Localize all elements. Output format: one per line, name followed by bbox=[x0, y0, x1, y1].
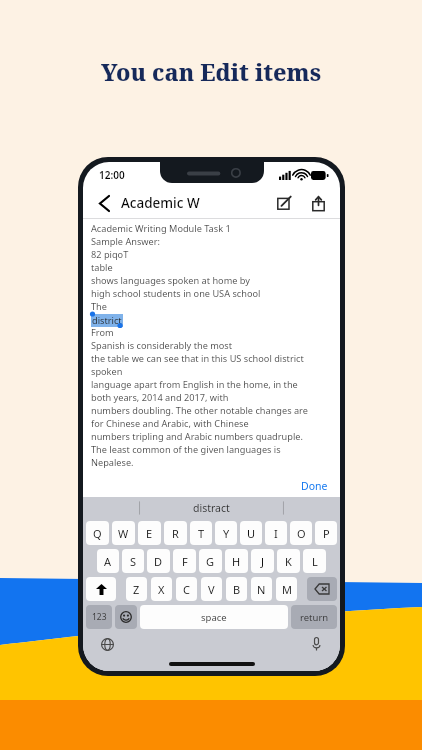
button[interactable]: E bbox=[138, 521, 161, 545]
button[interactable]: P bbox=[315, 521, 337, 545]
button[interactable]: Done bbox=[289, 479, 340, 493]
staticText: D bbox=[154, 554, 163, 569]
button[interactable]: X bbox=[151, 577, 172, 601]
staticText: M bbox=[282, 582, 292, 597]
button[interactable]: 123 bbox=[86, 605, 112, 629]
staticText: R bbox=[172, 526, 179, 541]
staticText: Y bbox=[223, 526, 230, 541]
staticText: for Chinese and Arabic, with Chinese bbox=[91, 417, 249, 430]
button[interactable]: S bbox=[122, 549, 144, 573]
staticText: You can Edit items bbox=[0, 56, 422, 87]
staticText: O bbox=[297, 526, 306, 541]
staticText: B bbox=[233, 582, 241, 597]
staticText: P bbox=[323, 526, 330, 541]
button[interactable]: D bbox=[147, 549, 170, 573]
staticText: N bbox=[257, 582, 266, 597]
staticText: numbers tripling and Arabic numbers quad… bbox=[91, 430, 303, 443]
staticText: Spanish is considerably the most bbox=[91, 339, 233, 352]
staticText: Academic W bbox=[121, 194, 200, 212]
staticText: distract bbox=[193, 501, 230, 515]
staticText: U bbox=[247, 526, 256, 541]
button[interactable]: return bbox=[291, 605, 337, 629]
staticText: 82 piqoT bbox=[91, 248, 129, 261]
staticText: The bbox=[91, 300, 107, 313]
staticText: G bbox=[206, 554, 215, 569]
button[interactable]: Back bbox=[93, 192, 115, 214]
button[interactable]: K bbox=[277, 549, 300, 573]
staticText: A bbox=[104, 554, 112, 569]
button[interactable]: W bbox=[112, 521, 135, 545]
staticText: X bbox=[158, 582, 165, 597]
staticText: W bbox=[118, 526, 129, 541]
button[interactable]: Y bbox=[215, 521, 237, 545]
staticText: Z bbox=[133, 582, 140, 597]
button[interactable]: C bbox=[176, 577, 197, 601]
staticText: From bbox=[91, 326, 114, 339]
button[interactable]: V bbox=[201, 577, 222, 601]
button[interactable]: H bbox=[225, 549, 248, 573]
staticText: the table we can see that in this US sch… bbox=[91, 352, 304, 365]
staticText: return bbox=[300, 611, 329, 624]
staticText: numbers doubling. The other notable chan… bbox=[91, 404, 308, 417]
staticText: T bbox=[198, 526, 205, 541]
staticText: V bbox=[208, 582, 215, 597]
staticText: The least common of the given languages … bbox=[91, 443, 281, 456]
staticText: K bbox=[285, 554, 292, 569]
button[interactable]: Z bbox=[126, 577, 147, 601]
button[interactable]: B bbox=[226, 577, 247, 601]
button[interactable]: R bbox=[164, 521, 187, 545]
staticText: H bbox=[232, 554, 241, 569]
button[interactable]: G bbox=[199, 549, 222, 573]
button[interactable]: U bbox=[240, 521, 262, 545]
button[interactable]: Q bbox=[86, 521, 109, 545]
staticText: Academic Writing Module Task 1 bbox=[91, 222, 231, 235]
staticText: Sample Answer: bbox=[91, 235, 160, 248]
button[interactable]: L bbox=[303, 549, 326, 573]
staticText: table bbox=[91, 261, 113, 274]
button[interactable]: Emoji bbox=[115, 605, 137, 629]
button[interactable]: Dictation bbox=[306, 634, 326, 654]
button[interactable]: distract bbox=[83, 497, 340, 519]
button[interactable]: Edit bbox=[272, 191, 296, 215]
staticText: 12:00 bbox=[99, 168, 125, 182]
staticText: district bbox=[92, 314, 122, 327]
button[interactable]: J bbox=[251, 549, 274, 573]
staticText: Q bbox=[93, 526, 102, 541]
staticText: C bbox=[183, 582, 190, 597]
button[interactable]: T bbox=[190, 521, 212, 545]
staticText: E bbox=[146, 526, 153, 541]
staticText: spoken bbox=[91, 365, 123, 378]
staticText: both years, 2014 and 2017, with bbox=[91, 391, 229, 404]
staticText: high school students in one USA school bbox=[91, 287, 261, 300]
button[interactable]: A bbox=[97, 549, 119, 573]
button[interactable]: Share bbox=[306, 191, 330, 215]
staticText: shows languages spoken at home by bbox=[91, 274, 250, 287]
button[interactable]: O bbox=[290, 521, 312, 545]
button[interactable]: M bbox=[276, 577, 297, 601]
button[interactable]: Shift bbox=[86, 577, 116, 601]
button[interactable]: space bbox=[140, 605, 288, 629]
staticText: I bbox=[274, 526, 278, 541]
button[interactable]: Change keyboard bbox=[97, 634, 117, 654]
staticText: 123 bbox=[92, 611, 107, 623]
button[interactable]: I bbox=[265, 521, 287, 545]
staticText: language apart from English in the home,… bbox=[91, 378, 298, 391]
staticText: Nepalese. bbox=[91, 456, 134, 469]
staticText: Done bbox=[301, 479, 328, 493]
staticText: space bbox=[201, 611, 227, 624]
button[interactable]: N bbox=[251, 577, 272, 601]
staticText: F bbox=[182, 554, 188, 569]
button[interactable]: Backspace bbox=[307, 577, 337, 601]
staticText: J bbox=[261, 554, 265, 569]
staticText: L bbox=[312, 554, 318, 569]
staticText: S bbox=[130, 554, 137, 569]
button[interactable]: F bbox=[173, 549, 196, 573]
